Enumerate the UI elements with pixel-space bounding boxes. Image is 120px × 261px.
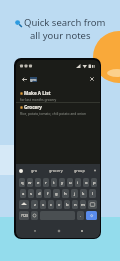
staticText: for last months grocery	[20, 97, 57, 101]
button[interactable]: r	[43, 178, 49, 187]
button[interactable]: z	[31, 200, 38, 209]
button[interactable]: p	[91, 178, 97, 187]
button[interactable]: l	[89, 189, 96, 198]
staticText: k	[82, 191, 85, 197]
staticText: y	[61, 180, 64, 186]
staticText: s	[30, 191, 33, 197]
staticText: m	[81, 202, 85, 208]
staticText: z	[34, 202, 36, 208]
staticText: u	[69, 180, 72, 186]
staticText: Grocery	[24, 104, 42, 110]
button[interactable]: Home	[54, 226, 63, 235]
staticText: ?123	[21, 214, 28, 218]
staticText: o	[85, 180, 88, 186]
button[interactable]: b	[64, 200, 70, 209]
button[interactable]: e	[35, 178, 41, 187]
button[interactable]: q	[19, 178, 25, 187]
button[interactable]: a	[20, 189, 26, 198]
staticText: gro	[30, 77, 37, 82]
button[interactable]: v	[56, 200, 62, 209]
button[interactable]: d	[36, 189, 42, 198]
staticText: p	[93, 180, 96, 186]
staticText: a	[22, 191, 25, 197]
button[interactable]: Back	[20, 75, 28, 83]
button[interactable]: w	[27, 178, 33, 187]
button[interactable]: Emoji	[31, 211, 38, 220]
button[interactable]: Grocery	[16, 103, 100, 116]
button[interactable]: h	[62, 189, 69, 198]
button[interactable]: Search	[86, 211, 97, 220]
staticText: all your notes	[30, 29, 91, 42]
staticText: Make A List	[24, 90, 51, 96]
staticText: gro	[31, 168, 38, 173]
staticText: i	[77, 180, 79, 186]
staticText: l	[92, 191, 94, 197]
staticText: grocery	[49, 168, 63, 173]
staticText: g	[55, 191, 58, 197]
button[interactable]: Shift	[19, 200, 29, 209]
button[interactable]: s	[28, 189, 34, 198]
staticText: w	[28, 180, 32, 186]
staticText: n	[74, 202, 77, 208]
button[interactable]: Make A List	[16, 89, 100, 102]
staticText: v	[58, 202, 61, 208]
button[interactable]: y	[59, 178, 65, 187]
button[interactable]: k	[80, 189, 87, 198]
staticText: h	[64, 191, 67, 197]
button[interactable]: m	[80, 200, 86, 209]
button[interactable]: g	[53, 189, 60, 198]
button[interactable]: Back	[30, 226, 39, 235]
button[interactable]: j	[71, 189, 78, 198]
button[interactable]: Clear search	[88, 75, 96, 83]
staticText: f	[47, 191, 49, 197]
button[interactable]: o	[83, 178, 89, 187]
button[interactable]: c	[48, 200, 54, 209]
button[interactable]: u	[67, 178, 73, 187]
button[interactable]: Recent apps	[77, 226, 86, 235]
staticText: t	[53, 180, 55, 186]
staticText: group	[74, 168, 85, 173]
staticText: c	[50, 202, 53, 208]
button[interactable]: x	[40, 200, 46, 209]
staticText: j	[74, 191, 76, 197]
button[interactable]: Backspace	[88, 200, 97, 209]
staticText: Rice, potato,tomato, chili potato and on…	[20, 111, 87, 115]
staticText: r	[45, 180, 47, 186]
staticText: b	[66, 202, 69, 208]
button[interactable]: i	[75, 178, 81, 187]
button[interactable]: ?123	[19, 211, 29, 220]
staticText: d	[38, 191, 41, 197]
button[interactable]: Period	[77, 211, 84, 220]
button[interactable]: t	[51, 178, 57, 187]
staticText: e	[37, 180, 40, 186]
staticText: Quick search from	[24, 16, 106, 29]
staticText: q	[21, 180, 24, 186]
button[interactable]: f	[44, 189, 51, 198]
button[interactable]: n	[72, 200, 78, 209]
staticText: x	[42, 202, 45, 208]
